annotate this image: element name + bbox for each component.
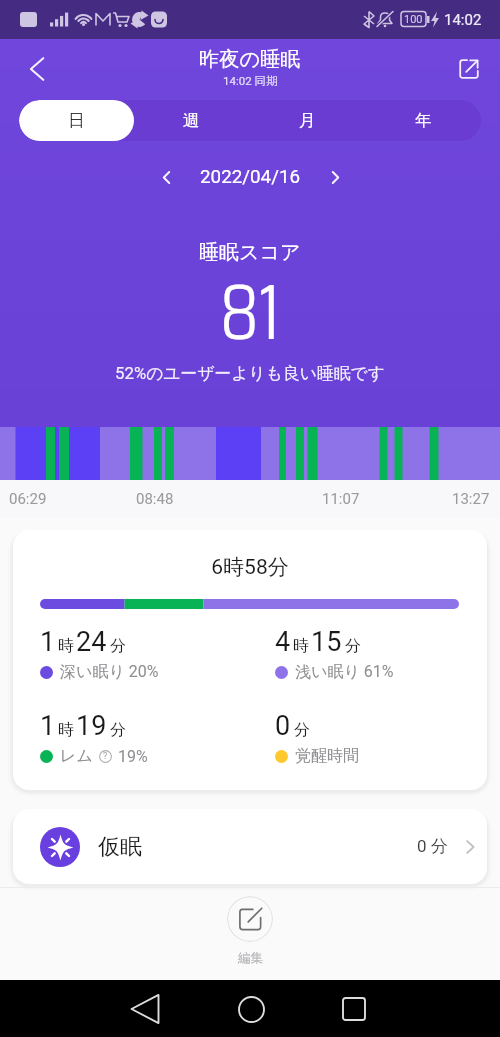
staticText: 浅い眠り 61%	[295, 662, 394, 682]
staticText: 分	[110, 720, 126, 740]
staticText: 分	[294, 720, 310, 740]
button[interactable]: 週	[134, 100, 249, 141]
staticText: ?	[103, 751, 108, 762]
button[interactable]: 日	[19, 100, 134, 141]
button[interactable]: Edit	[227, 896, 273, 942]
staticText: 睡眠スコア	[199, 240, 301, 265]
staticText: 4	[275, 626, 291, 658]
staticText: 06:29	[9, 490, 47, 508]
staticText: 分	[110, 636, 126, 656]
button[interactable]: Previous day	[148, 159, 184, 195]
staticText: 19	[76, 710, 107, 742]
button[interactable]: 年	[365, 100, 481, 141]
staticText: 0	[275, 710, 291, 742]
staticText: 81	[220, 249, 281, 373]
staticText: 深い眠り 20%	[60, 662, 159, 682]
button[interactable]: Next day	[317, 159, 353, 195]
button[interactable]: Home	[229, 987, 273, 1031]
staticText: 年	[415, 110, 432, 131]
staticText: 13:27	[452, 490, 490, 508]
staticText: 時	[293, 636, 309, 656]
staticText: 2022/04/16	[200, 166, 301, 188]
staticText: 14:02 同期	[223, 74, 278, 88]
staticText: 08:48	[136, 490, 174, 508]
staticText: 1	[40, 626, 56, 658]
staticText: 1	[40, 710, 56, 742]
button[interactable]: 仮眠	[13, 809, 487, 884]
staticText: 時	[58, 636, 74, 656]
staticText: 週	[183, 110, 200, 131]
button[interactable]: Share	[446, 46, 492, 92]
button[interactable]: Back	[13, 45, 61, 93]
staticText: 19%	[118, 747, 148, 766]
staticText: 11:07	[322, 490, 360, 508]
staticText: 時	[58, 720, 74, 740]
staticText: 分	[345, 636, 361, 656]
staticText: 昨夜の睡眠	[199, 47, 301, 72]
staticText: 6時58分	[13, 554, 487, 580]
staticText: 日	[68, 110, 85, 131]
staticText: 0 分	[417, 836, 448, 857]
staticText: 編集	[238, 950, 263, 966]
staticText: 24	[76, 626, 107, 658]
button[interactable]: Recents	[332, 987, 376, 1031]
staticText: 月	[299, 110, 316, 131]
staticText: 52%のユーザーよりも良い睡眠です	[115, 363, 385, 384]
button[interactable]: Back	[123, 987, 167, 1031]
staticText: 15	[311, 626, 342, 658]
staticText: レム	[60, 746, 93, 766]
staticText: 100	[404, 13, 423, 26]
staticText: 仮眠	[98, 833, 142, 861]
button[interactable]: 月	[249, 100, 365, 141]
staticText: 覚醒時間	[295, 746, 359, 766]
staticText: 14:02	[444, 11, 482, 29]
